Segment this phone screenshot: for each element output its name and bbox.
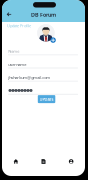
staticText: jhsharkum@gmail.com [8,75,50,80]
staticText: Update Profile [7,23,31,28]
button[interactable]: Back [4,8,14,20]
button[interactable]: UPDATE [38,95,55,103]
staticText: UPDATE [39,96,53,102]
staticText: ●●●●●●●● [8,88,32,92]
staticText: DB Forum [31,11,56,18]
button[interactable]: Account [57,155,85,167]
staticText: Name [8,49,19,54]
staticText: username [8,62,26,67]
button[interactable]: Home [2,155,30,167]
button[interactable]: Documents [30,155,57,167]
